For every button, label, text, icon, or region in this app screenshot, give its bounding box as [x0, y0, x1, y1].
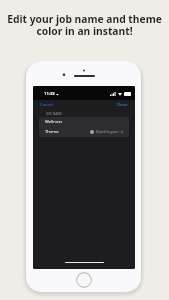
- staticText: Done: [117, 102, 128, 108]
- staticText: Edit your job name and theme color in an…: [3, 12, 166, 38]
- button[interactable]: Cancel: [38, 101, 55, 109]
- button[interactable]: Done: [115, 101, 130, 109]
- staticText: Cancel: [40, 102, 53, 108]
- staticText: Wellness: [45, 119, 63, 125]
- button[interactable]: Wellness: [39, 117, 129, 127]
- button[interactable]: Theme: [39, 127, 129, 137]
- staticText: Theme: [45, 129, 59, 135]
- staticText: JOB NAME: [46, 112, 63, 116]
- staticText: 11:33: [44, 91, 55, 97]
- staticText: Bubblegum: [96, 129, 119, 135]
